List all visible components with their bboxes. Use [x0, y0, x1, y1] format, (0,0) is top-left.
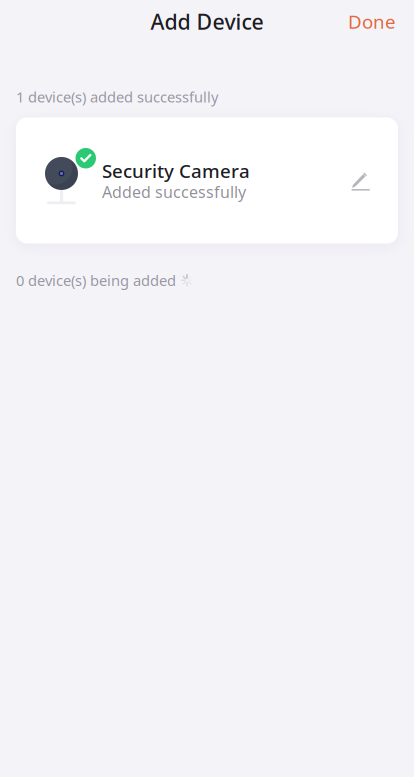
staticText: 1 device(s) added successfully — [16, 87, 218, 106]
staticText: 0 device(s) being added — [16, 270, 176, 290]
staticText: Done — [348, 9, 396, 34]
button[interactable]: Security Camera — [16, 117, 398, 243]
staticText: Security Camera — [102, 158, 250, 183]
staticText: Added successfully — [102, 181, 246, 202]
staticText: Add Device — [150, 7, 263, 36]
button[interactable]: Done — [330, 0, 414, 44]
